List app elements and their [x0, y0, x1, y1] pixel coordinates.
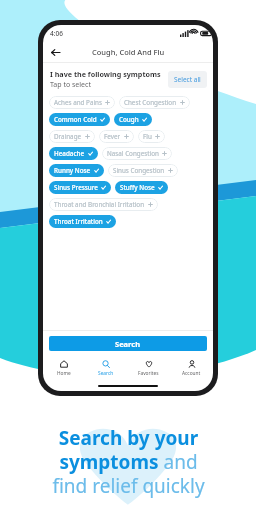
button[interactable]: Search: [49, 336, 207, 351]
button[interactable]: Select all: [168, 71, 207, 88]
staticText: Chest Congestion: [124, 98, 177, 107]
staticText: Stuffy Nose: [120, 183, 155, 192]
staticText: Sinus Congestion: [113, 166, 165, 175]
staticText: Runny Nose: [54, 166, 91, 175]
staticText: Flu: [143, 132, 152, 141]
button[interactable]: Fever: [99, 130, 134, 143]
staticText: Throat and Bronchial Irritation: [54, 200, 145, 209]
button[interactable]: Favorites: [127, 358, 170, 379]
button[interactable]: Home: [43, 358, 85, 379]
staticText: Favorites: [138, 370, 159, 377]
staticText: I have the following symptoms: [50, 69, 161, 79]
staticText: Tap to select: [50, 80, 91, 90]
staticText: Throat Irritation: [54, 217, 103, 226]
staticText: 4:06: [50, 29, 63, 38]
staticText: Headache: [54, 149, 85, 158]
button[interactable]: Sinus Pressure: [49, 181, 111, 194]
staticText: Search: [115, 339, 141, 349]
button[interactable]: Headache: [49, 147, 98, 160]
staticText: Search: [98, 370, 114, 377]
staticText: Search by your symptoms and find relief …: [52, 425, 205, 498]
staticText: Account: [182, 370, 201, 377]
button[interactable]: Cough: [114, 113, 152, 126]
staticText: Select all: [174, 75, 201, 84]
staticText: Nasal Congestion: [107, 149, 159, 158]
button[interactable]: Common Cold: [49, 113, 110, 126]
button[interactable]: Throat Irritation: [49, 215, 116, 228]
button[interactable]: Runny Nose: [49, 164, 104, 177]
staticText: Drainage: [54, 132, 82, 141]
button[interactable]: Back: [47, 44, 63, 60]
staticText: Cough: [119, 115, 139, 124]
staticText: Sinus Pressure: [54, 183, 98, 192]
button[interactable]: Drainage: [49, 130, 95, 143]
staticText: Fever: [104, 132, 121, 141]
button[interactable]: Search: [85, 358, 127, 379]
staticText: Cough, Cold And Flu: [92, 47, 165, 57]
button[interactable]: Flu: [138, 130, 165, 143]
button[interactable]: Aches and Pains: [49, 96, 115, 109]
staticText: Common Cold: [54, 115, 97, 124]
button[interactable]: Chest Congestion: [119, 96, 190, 109]
button[interactable]: Sinus Congestion: [108, 164, 178, 177]
button[interactable]: Nasal Congestion: [102, 147, 172, 160]
staticText: Home: [57, 370, 71, 377]
button[interactable]: Throat and Bronchial Irritation: [49, 198, 158, 211]
button[interactable]: Account: [170, 358, 213, 379]
button[interactable]: Stuffy Nose: [115, 181, 168, 194]
staticText: Aches and Pains: [54, 98, 102, 107]
